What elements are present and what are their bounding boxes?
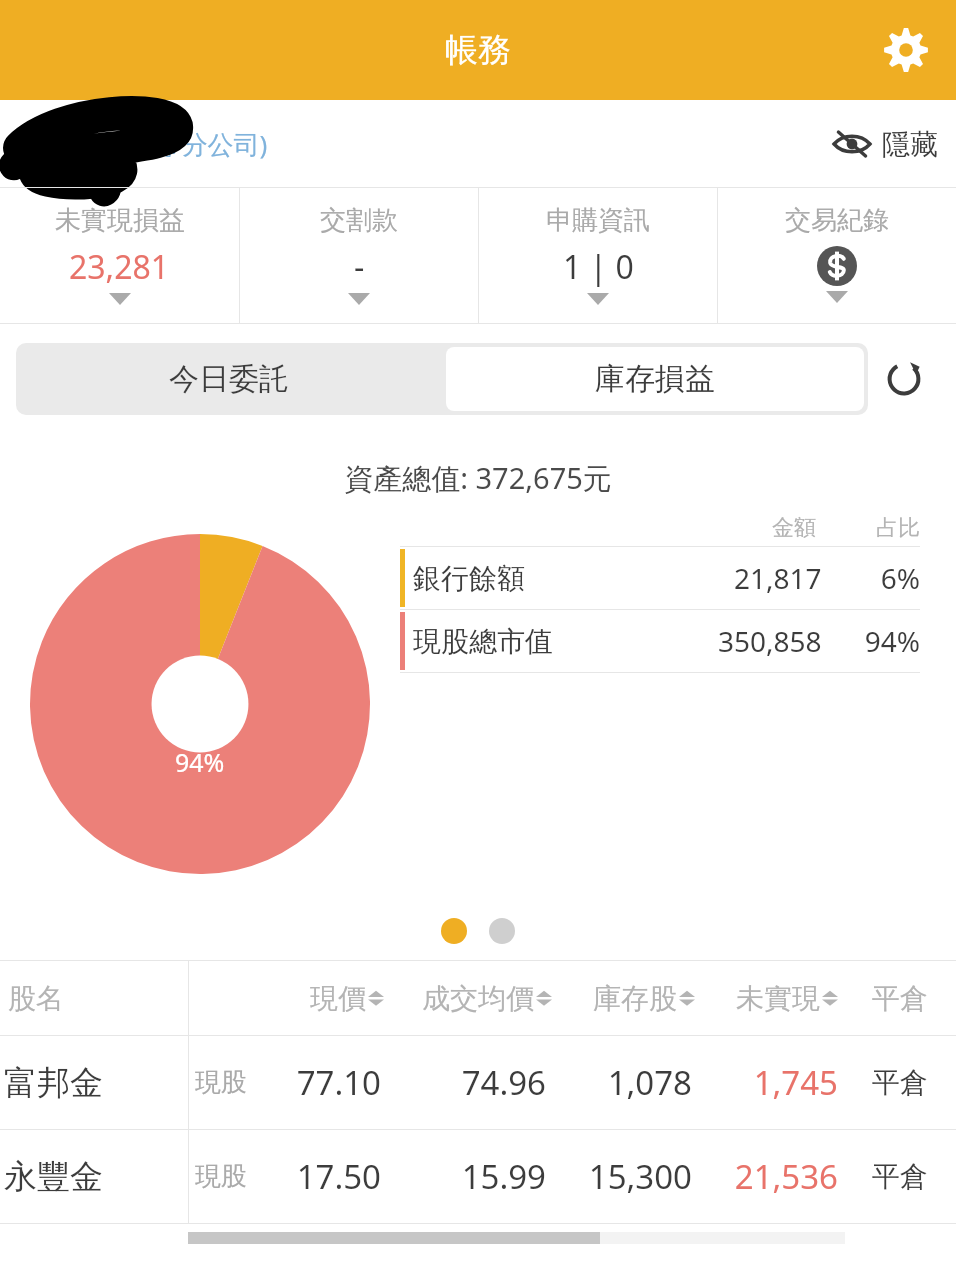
staticText: 15.99 [381, 1154, 546, 1199]
staticText: 富邦金 [4, 1062, 103, 1104]
button[interactable]: 銀行餘額 [400, 547, 920, 609]
staticText: 成交均價 [422, 981, 534, 1016]
staticText: 現股總市值 [413, 624, 553, 659]
button[interactable]: 永豐金 [0, 1130, 956, 1223]
button[interactable]: 交割款 [240, 188, 478, 323]
staticText: 股名 [8, 981, 64, 1016]
button[interactable]: 富邦金 [0, 1036, 956, 1129]
button[interactable]: 交易紀錄 [718, 188, 956, 323]
button[interactable]: 未實現損益 [0, 188, 239, 323]
staticText: 1,745 [692, 1060, 838, 1105]
staticText: 94% [840, 622, 920, 660]
staticText: 6% [840, 559, 920, 597]
staticText: 350,858 [718, 622, 822, 660]
staticText: 現股 [195, 1160, 247, 1193]
button[interactable]: 申購資訊 [479, 188, 717, 323]
staticText: 15,300 [546, 1154, 692, 1199]
staticText: 平倉 [872, 981, 928, 1016]
staticText: 申購資訊 [546, 204, 650, 237]
staticText: 交割款 [320, 204, 398, 237]
staticText: 21,536 [692, 1154, 838, 1199]
staticText: 94% [175, 745, 225, 779]
button[interactable]: 庫存股 [552, 961, 695, 1035]
staticText: 21,817 [734, 559, 822, 597]
staticText: 未實現損益 [55, 204, 185, 237]
button[interactable]: 平倉 [844, 1130, 956, 1223]
button[interactable]: 現價 [259, 961, 384, 1035]
staticText: 交易紀錄 [785, 204, 889, 237]
staticText: 17.50 [253, 1154, 381, 1199]
staticText: 庫存損益 [595, 360, 715, 398]
button[interactable]: 未實現 [695, 961, 838, 1035]
staticText: 隱藏 [882, 127, 938, 162]
button[interactable]: Refresh [868, 343, 940, 415]
staticText: 未實現 [736, 981, 820, 1016]
staticText: 占比 [876, 514, 920, 542]
staticText: 帳務 [445, 29, 511, 71]
staticText: 今日委託 [169, 360, 289, 398]
button[interactable]: 現股總市值 [400, 610, 920, 672]
staticText: 23,281 [69, 245, 170, 289]
staticText: 平倉 [872, 1065, 928, 1100]
staticText: 銀行餘額 [413, 561, 525, 596]
staticText: 金額 [772, 514, 816, 542]
button[interactable]: 隱藏 [832, 124, 938, 164]
staticText: 平倉 [872, 1159, 928, 1194]
button[interactable]: 平倉 [844, 1036, 956, 1129]
button[interactable]: 庫存損益 [446, 347, 864, 411]
button[interactable]: 成交均價 [384, 961, 552, 1035]
staticText: - [354, 245, 365, 289]
staticText: 永豐金 [4, 1156, 103, 1198]
staticText: (證券帳號/分公司) [6, 126, 268, 162]
staticText: 資產總值: 372,675元 [0, 458, 956, 498]
staticText: 1,078 [546, 1060, 692, 1105]
staticText: 現價 [310, 981, 366, 1016]
button[interactable]: Settings [870, 14, 942, 86]
button[interactable]: Page 2 [489, 918, 515, 944]
button[interactable]: 今日委託 [16, 343, 442, 415]
staticText: 77.10 [253, 1060, 381, 1105]
staticText: 74.96 [381, 1060, 546, 1105]
staticText: 1 | 0 [563, 245, 634, 289]
staticText: 現股 [195, 1066, 247, 1099]
staticText: 庫存股 [593, 981, 677, 1016]
button[interactable]: Page 1 [441, 918, 467, 944]
